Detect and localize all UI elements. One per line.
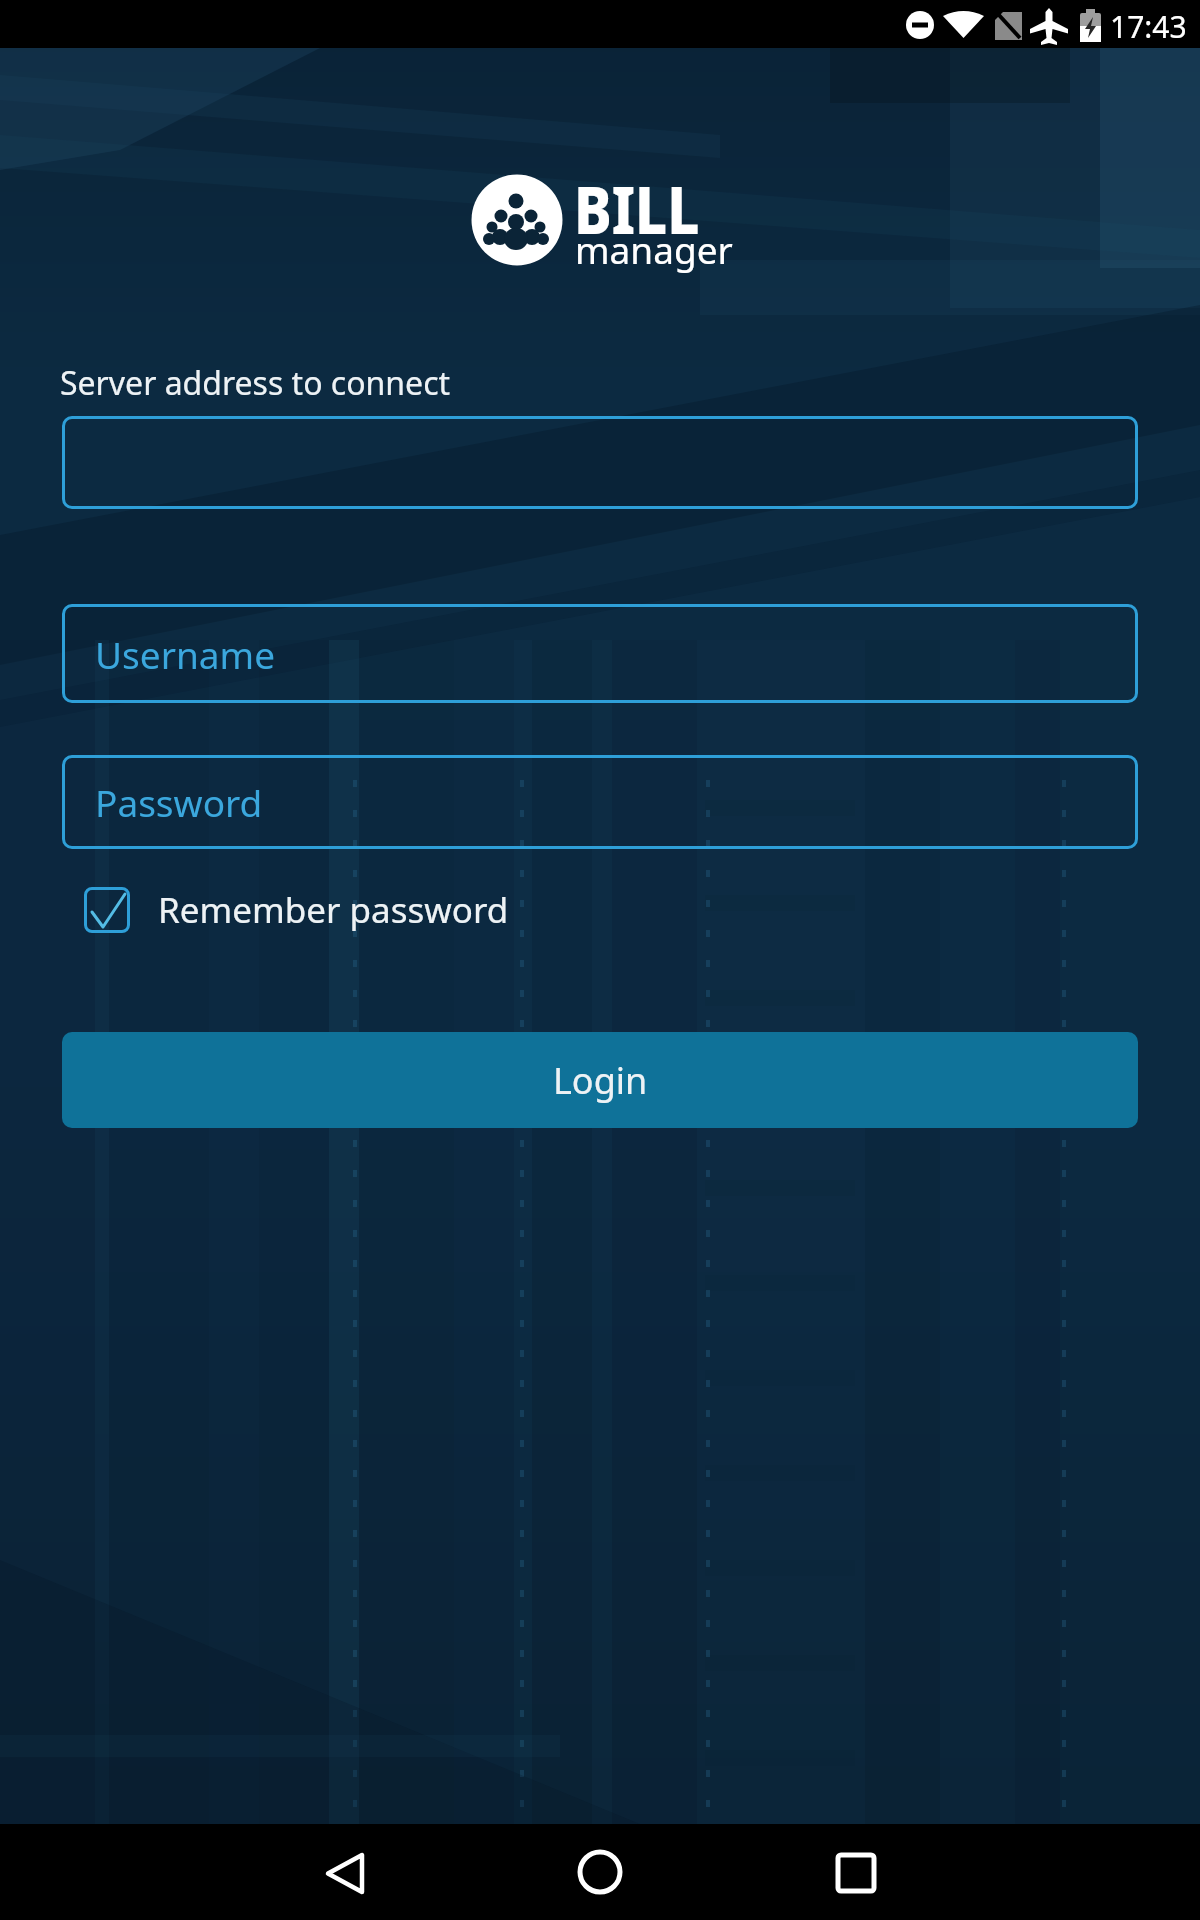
button[interactable]: [62, 416, 1138, 509]
staticText: Password: [95, 777, 263, 827]
button[interactable]: Username: [62, 604, 1138, 703]
button[interactable]: [0, 1824, 400, 1920]
staticText: Server address to connect: [60, 361, 451, 405]
button[interactable]: Remember password: [84, 886, 509, 934]
button[interactable]: [800, 1824, 1200, 1920]
staticText: BILL: [574, 163, 700, 254]
staticText: Login: [553, 1056, 648, 1105]
staticText: Username: [95, 629, 276, 679]
button[interactable]: Login: [62, 1032, 1138, 1128]
button[interactable]: [400, 1824, 800, 1920]
staticText: Remember password: [158, 886, 509, 934]
staticText: manager: [575, 224, 733, 274]
button[interactable]: Password: [62, 755, 1138, 849]
staticText: 17:43: [1110, 6, 1187, 47]
